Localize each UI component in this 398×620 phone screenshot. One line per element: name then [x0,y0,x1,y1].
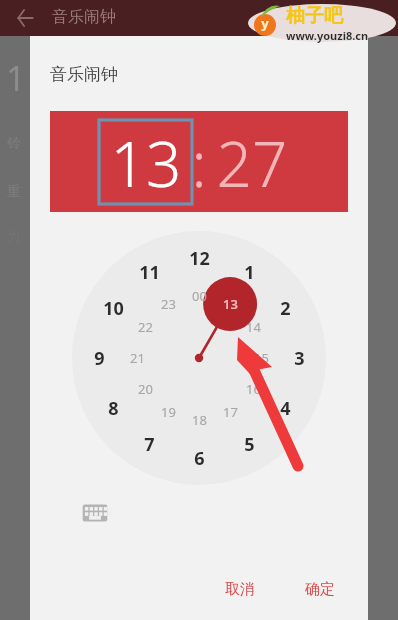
staticText: 重 [7,183,21,201]
staticText: 14 [246,318,261,336]
button[interactable]: 17 [212,399,248,425]
staticText: 20 [138,380,153,398]
button[interactable]: 6 [181,445,217,471]
staticText: 1 [244,260,255,285]
staticText: y [254,14,276,36]
button[interactable]: 11 [131,259,167,285]
staticText: 5 [244,432,255,457]
button[interactable]: 15 [243,345,279,371]
button[interactable]: 19 [150,399,186,425]
staticText: 00 [192,287,207,305]
button[interactable]: 取消 [212,572,268,606]
button[interactable]: 3 [281,345,317,371]
staticText: 1 [6,55,26,101]
button[interactable]: 12 [181,245,217,271]
button[interactable]: 9 [81,345,117,371]
staticText: 2 [280,296,291,321]
button[interactable]: Switch to keyboard input [80,501,110,525]
button[interactable]: 7 [131,431,167,457]
button[interactable]: 14 [235,314,271,340]
button[interactable]: 1 [231,259,267,285]
staticText: 18 [192,411,207,429]
button[interactable] [99,120,192,204]
staticText: 15 [254,349,269,367]
button[interactable]: 4 [267,395,303,421]
button[interactable]: 5 [231,431,267,457]
staticText: 17 [223,403,238,421]
staticText: : [190,121,208,203]
staticText: 21 [130,349,145,367]
button[interactable]: 2 [267,295,303,321]
staticText: 7 [144,432,155,457]
staticText: www.youzi8.cn [286,28,369,43]
button[interactable]: 20 [127,376,163,402]
staticText: 音乐闹钟 [50,64,118,85]
staticText: 确定 [305,580,335,599]
staticText: 10 [103,296,124,321]
staticText: 8 [108,396,119,421]
staticText: 22 [138,318,153,336]
staticText: 12 [189,246,210,271]
button[interactable]: 10 [95,295,131,321]
staticText: 柚子吧 [286,4,343,28]
staticText: 9 [94,346,105,371]
button[interactable]: 27 [206,121,298,203]
button[interactable]: 18 [181,407,217,433]
staticText: 13 [102,121,190,203]
button[interactable]: 16 [235,376,271,402]
button[interactable]: 22 [127,314,163,340]
staticText: 23 [161,295,176,313]
staticText: 16 [246,380,261,398]
button[interactable]: 8 [95,395,131,421]
staticText: 4 [280,396,291,421]
staticText: 铃 [7,135,21,153]
staticText: 音乐闹钟 [52,7,116,27]
staticText: 19 [161,403,176,421]
staticText: 11 [139,260,160,285]
staticText: 取消 [225,580,255,599]
button[interactable]: 确定 [292,572,348,606]
button[interactable]: 21 [119,345,155,371]
staticText: 3 [294,346,305,371]
staticText: 13 [223,295,238,313]
button[interactable]: 23 [150,291,186,317]
button[interactable]: 00 [181,283,217,309]
button[interactable]: 13 [212,291,248,317]
staticText: 6 [194,446,205,471]
button[interactable]: Back [14,6,38,30]
